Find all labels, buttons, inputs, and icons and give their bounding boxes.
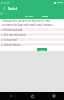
staticText: Task 4	[8, 7, 18, 11]
staticText: I'm not returning	[4, 33, 26, 36]
button[interactable]: I had returned	[0, 28, 64, 31]
staticText: Q 1 of 4	[25, 15, 34, 18]
staticText: I returned	[4, 38, 17, 41]
button[interactable]: Recent apps	[43, 92, 64, 100]
staticText: I don't return	[4, 43, 21, 46]
button[interactable]: Back	[0, 5, 8, 12]
staticText: Choose the correct verb form for the sen…	[2, 19, 62, 26]
staticText: NEXT	[40, 49, 45, 51]
staticText: 20:58	[42, 15, 48, 18]
button[interactable]: I returned	[0, 38, 64, 41]
button[interactable]: Back	[0, 92, 22, 100]
staticText: I had returned	[4, 28, 23, 31]
button[interactable]: Home	[22, 92, 43, 100]
staticText: 20:58	[57, 1, 63, 4]
button[interactable]: NEXT	[37, 48, 47, 51]
button[interactable]: I don't return	[0, 43, 64, 46]
button[interactable]: I'm not returning	[0, 33, 64, 36]
